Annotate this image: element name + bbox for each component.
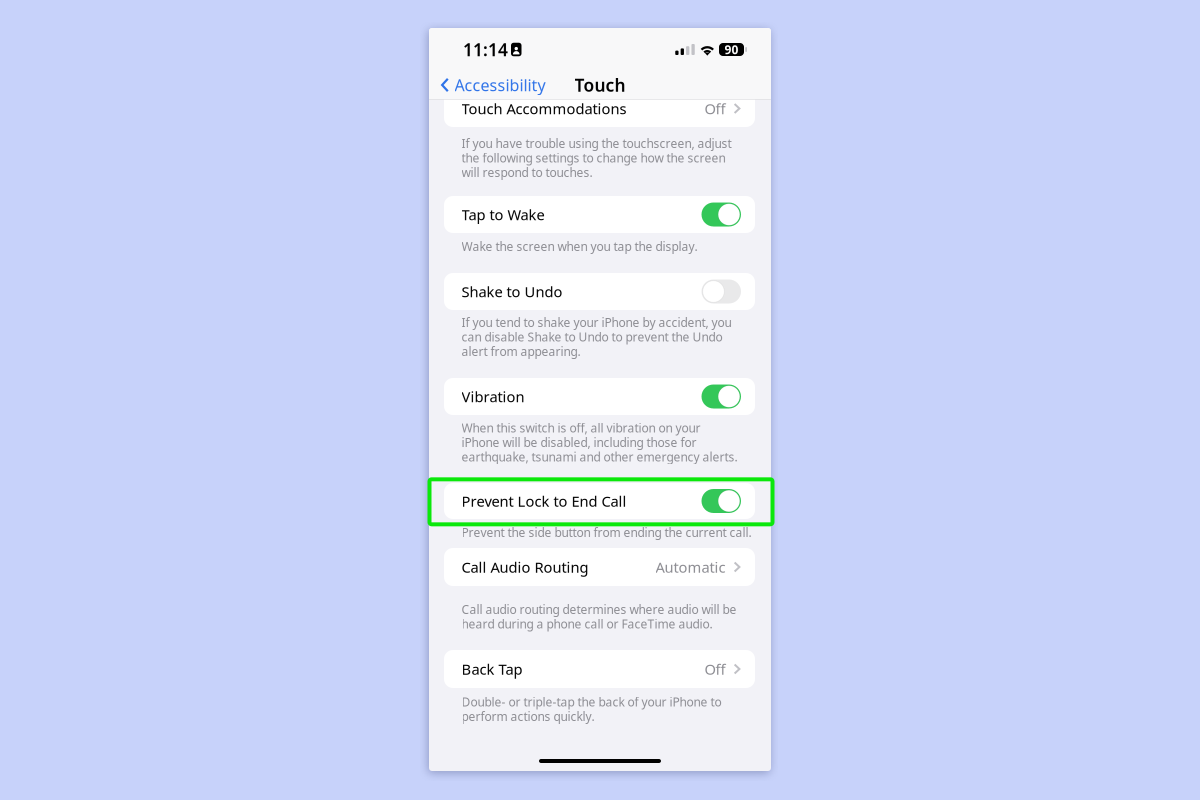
staticText: When this switch is off, all vibration o… [461,420,700,436]
staticText: Call Audio Routing [461,557,588,577]
staticText: iPhone will be disabled, including those… [461,434,696,450]
button[interactable]: Touch Accommodations [444,90,755,127]
staticText: Off [704,99,725,118]
staticText: Accessibility [454,74,545,96]
staticText: heard during a phone call or FaceTime au… [461,616,712,632]
staticText: Back Tap [461,659,522,679]
staticText: Shake to Undo [461,282,562,301]
button[interactable]: Accessibility [429,71,553,99]
staticText: perform actions quickly. [461,708,594,724]
staticText: Prevent Lock to End Call [461,491,626,511]
button[interactable]: Shake to Undo [444,273,755,310]
staticText: earthquake, tsunami and other emergency … [461,449,737,465]
button[interactable]: Vibration [444,378,755,415]
staticText: 90 [724,41,738,57]
staticText: Double- or triple-tap the back of your i… [461,694,721,710]
staticText: Automatic [655,557,725,577]
staticText: If you have trouble using the touchscree… [461,135,731,151]
staticText: If you tend to shake your iPhone by acci… [461,314,731,330]
staticText: alert from appearing. [461,343,580,359]
staticText: can disable Shake to Undo to prevent the… [461,329,722,345]
staticText: 11:14 [463,38,508,61]
staticText: Touch [574,73,625,96]
staticText: Off [704,659,725,679]
staticText: Vibration [461,387,524,406]
staticText: the following settings to change how the… [461,150,725,166]
staticText: will respond to touches. [461,164,592,180]
staticText: Touch Accommodations [461,99,626,118]
button[interactable]: Tap to Wake [444,196,755,233]
staticText: Wake the screen when you tap the display… [461,238,697,254]
button[interactable]: Call Audio Routing [444,548,755,586]
button[interactable]: Back Tap [444,650,755,688]
button[interactable]: Prevent Lock to End Call [444,483,755,519]
staticText: Call audio routing determines where audi… [461,601,736,617]
staticText: Prevent the side button from ending the … [461,524,751,540]
staticText: Tap to Wake [461,205,544,224]
